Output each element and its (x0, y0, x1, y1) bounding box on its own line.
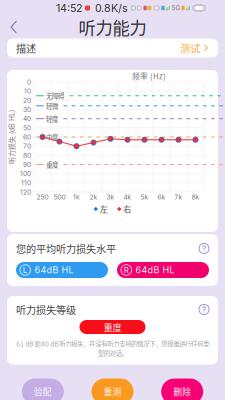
staticText: 250 (36, 193, 48, 201)
staticText: 0 (27, 78, 31, 86)
staticText: 64dB HL (34, 264, 73, 275)
staticText: 5k (140, 193, 148, 201)
staticText: 110 (21, 179, 31, 187)
staticText: 轻微 (46, 101, 58, 110)
staticText: 500 (53, 193, 65, 201)
button[interactable]: 重测 (78, 364, 147, 400)
staticText: 重度 (46, 160, 58, 169)
staticText: 5G (171, 4, 180, 12)
staticText: 听力能力 (78, 14, 146, 40)
button[interactable]: 验配 (8, 364, 78, 400)
staticText: 轻度 (46, 114, 58, 123)
button[interactable]: 删除 (147, 364, 217, 400)
staticText: ? (202, 305, 206, 314)
button[interactable]: 描述 (7, 38, 218, 57)
staticText: 60 (23, 133, 31, 141)
staticText: 64dB HL (135, 264, 174, 275)
staticText: 7k (174, 193, 182, 201)
staticText: 中度 (46, 132, 58, 142)
staticText: 重度 (103, 320, 121, 334)
staticText: 70 (23, 142, 31, 150)
staticText: 重测 (103, 385, 121, 398)
staticText: 听力损失 (dB HL) (0, 132, 38, 142)
staticText: ? (202, 244, 206, 253)
staticText: 4k (123, 193, 131, 201)
staticText: 8k (191, 193, 199, 201)
staticText: 80 (23, 151, 31, 159)
staticText: 30 (23, 105, 31, 114)
staticText: 61 dB 到 80 dB 听力损失，在没有听力支持的情况下，您很难进行任何类型… (16, 339, 209, 357)
staticText: 0.8K/s (95, 1, 128, 14)
staticText: 您的平均听力损失水平 (16, 241, 116, 256)
button[interactable]: 帮助 (199, 243, 209, 253)
staticText: 3k (106, 193, 114, 201)
staticText: 验配 (34, 385, 52, 398)
staticText: 测试 (180, 41, 200, 55)
button[interactable]: 返回 (4, 17, 24, 37)
staticText: 右 (123, 203, 131, 215)
staticText: 90 (23, 160, 31, 169)
staticText: R (124, 265, 129, 275)
staticText: 删除 (173, 385, 191, 398)
staticText: 50 (23, 124, 31, 132)
staticText: 120 (20, 188, 31, 196)
button[interactable]: 帮助 (199, 304, 209, 314)
staticText: 左 (100, 203, 108, 215)
staticText: 听力损失等级 (16, 302, 76, 317)
staticText: 14:52 (56, 1, 83, 14)
staticText: 20 (23, 96, 31, 104)
staticText: 描述 (16, 41, 36, 55)
staticText: 6k (157, 193, 165, 201)
staticText: 40 (23, 115, 31, 123)
staticText: 10 (24, 87, 31, 95)
staticText: 100 (20, 170, 31, 178)
staticText: 2k (89, 193, 97, 201)
staticText: 频率 (Hz) (132, 70, 166, 82)
staticText: L (23, 265, 28, 275)
staticText: 无障碍 (46, 91, 64, 100)
staticText: 1k (73, 193, 80, 201)
